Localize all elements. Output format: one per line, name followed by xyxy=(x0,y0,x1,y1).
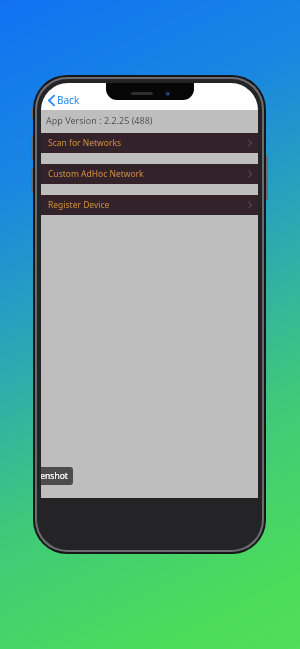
other: Open Register Device xyxy=(248,201,252,209)
button[interactable]: Scan for Networks xyxy=(41,133,258,153)
staticText: App Version : 2.2.25 (488) xyxy=(46,114,153,126)
button[interactable]: Register Device xyxy=(41,195,258,215)
other: Open Custom AdHoc Network xyxy=(248,170,252,178)
button[interactable]: Back xyxy=(46,92,82,108)
staticText: Scan for Networks xyxy=(48,137,122,149)
staticText: screenshot xyxy=(41,470,68,482)
button[interactable]: Custom AdHoc Network xyxy=(41,164,258,184)
button[interactable]: screenshot xyxy=(41,467,73,485)
other: Open Scan for Networks xyxy=(248,139,252,147)
staticText: Custom AdHoc Network xyxy=(48,168,144,180)
staticText: Back xyxy=(57,93,80,107)
staticText: Register Device xyxy=(48,199,110,211)
